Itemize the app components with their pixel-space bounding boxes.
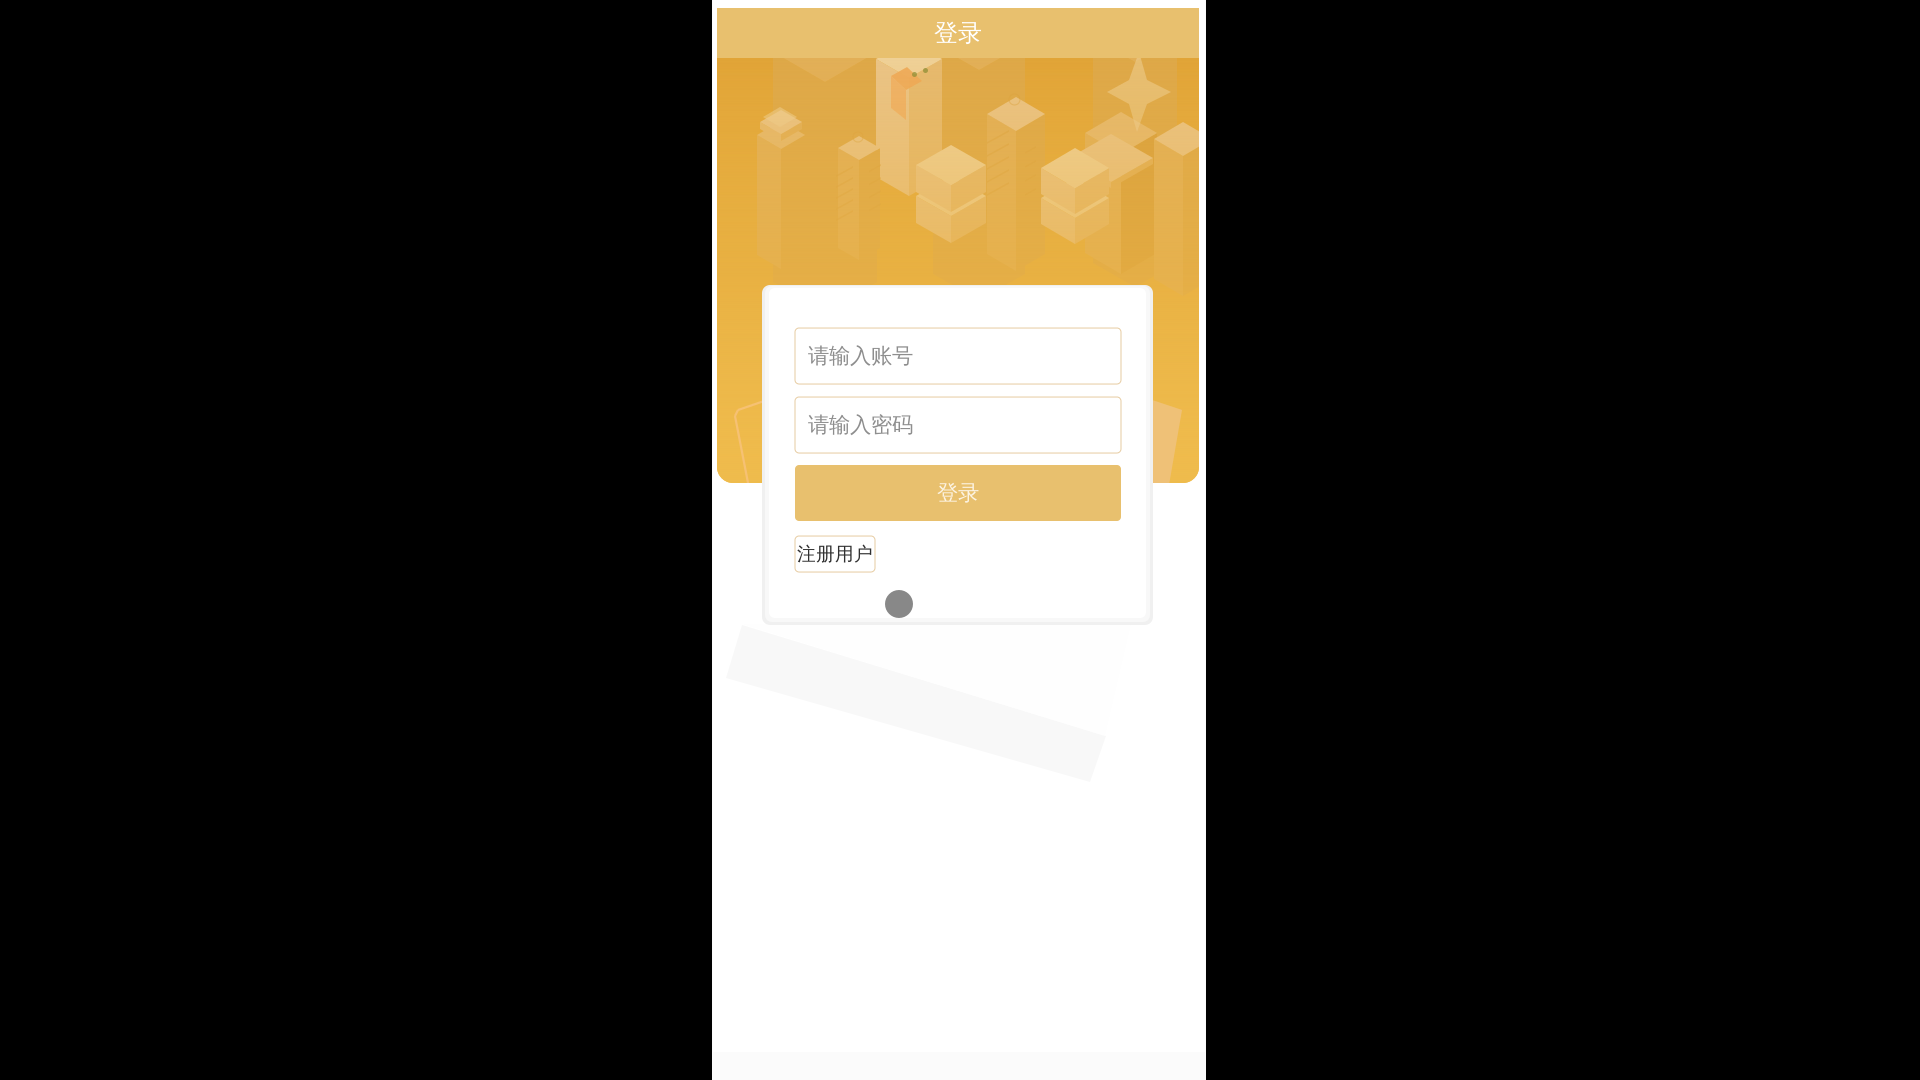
button[interactable]: 登录 — [795, 465, 1121, 521]
staticText: 请输入账号 — [808, 343, 913, 369]
button[interactable]: 注册用户 — [795, 536, 875, 572]
staticText: 请输入密码 — [808, 412, 913, 438]
staticText: 注册用户 — [797, 542, 873, 565]
staticText: 登录 — [934, 18, 982, 48]
staticText: 登录 — [937, 480, 979, 506]
